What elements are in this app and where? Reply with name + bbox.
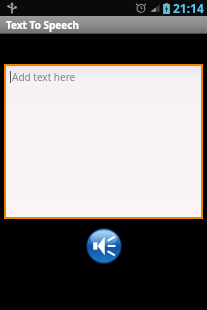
staticText: 21:14 — [173, 0, 204, 16]
staticText: Add text here — [12, 70, 76, 84]
staticText: Text To Speech — [6, 18, 79, 32]
button[interactable]: Add text here — [6, 66, 201, 217]
button[interactable]: Speak — [86, 228, 122, 264]
button[interactable]: Text To Speech — [0, 16, 207, 34]
